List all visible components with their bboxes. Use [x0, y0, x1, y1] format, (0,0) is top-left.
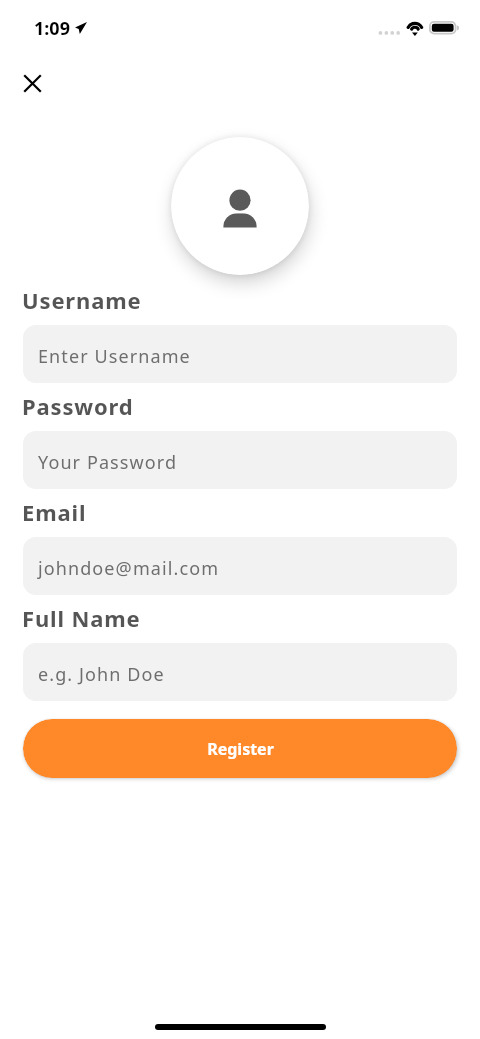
staticText: Register [207, 738, 274, 760]
staticText: Your Password [38, 450, 178, 475]
staticText: 1:09 [34, 16, 70, 41]
staticText: Email [22, 497, 87, 527]
staticText: Username [22, 285, 142, 315]
staticText: Enter Username [38, 344, 191, 369]
button[interactable]: Your Password [23, 431, 457, 489]
staticText: Full Name [22, 603, 141, 633]
staticText: e.g. John Doe [38, 662, 165, 687]
staticText: Password [22, 391, 134, 421]
button[interactable]: Close [17, 68, 48, 99]
button[interactable]: Enter Username [23, 325, 457, 383]
button[interactable]: johndoe@mail.com [23, 537, 457, 595]
button[interactable]: Profile photo [171, 137, 309, 275]
staticText: johndoe@mail.com [38, 556, 220, 581]
button[interactable]: e.g. John Doe [23, 643, 457, 701]
button[interactable]: Register [23, 719, 457, 778]
